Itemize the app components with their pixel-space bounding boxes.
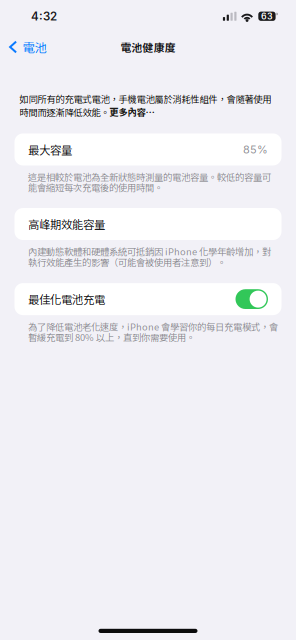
- staticText: 為了降低電池老化速度，iPhone 會學習你的每日充電模式，會暫緩充電到 80%…: [28, 321, 278, 342]
- staticText: 內建動態軟體和硬體系統可抵銷因 iPhone 化學年齡增加，對執行效能產生的影響…: [28, 246, 271, 267]
- staticText: 這是相較於電池為全新狀態時測量的電池容量。較低的容量可能會縮短每次充電後的使用時…: [28, 171, 271, 193]
- staticText: 最大容量: [28, 141, 72, 158]
- button[interactable]: 最佳化電池充電: [0, 283, 296, 315]
- staticText: 電池: [22, 38, 46, 56]
- staticText: 電池健康度: [120, 39, 175, 55]
- staticText: 85%: [243, 143, 268, 156]
- button[interactable]: 電池: [0, 33, 64, 61]
- staticText: 如同所有的充電式電池，手機電池屬於消耗性組件，會隨著使用時間而逐漸降低效能。更多…: [19, 92, 271, 118]
- staticText: 63: [261, 11, 273, 21]
- staticText: 高峰期效能容量: [28, 216, 105, 232]
- staticText: 4:32: [31, 9, 57, 23]
- staticText: 最佳化電池充電: [28, 291, 105, 307]
